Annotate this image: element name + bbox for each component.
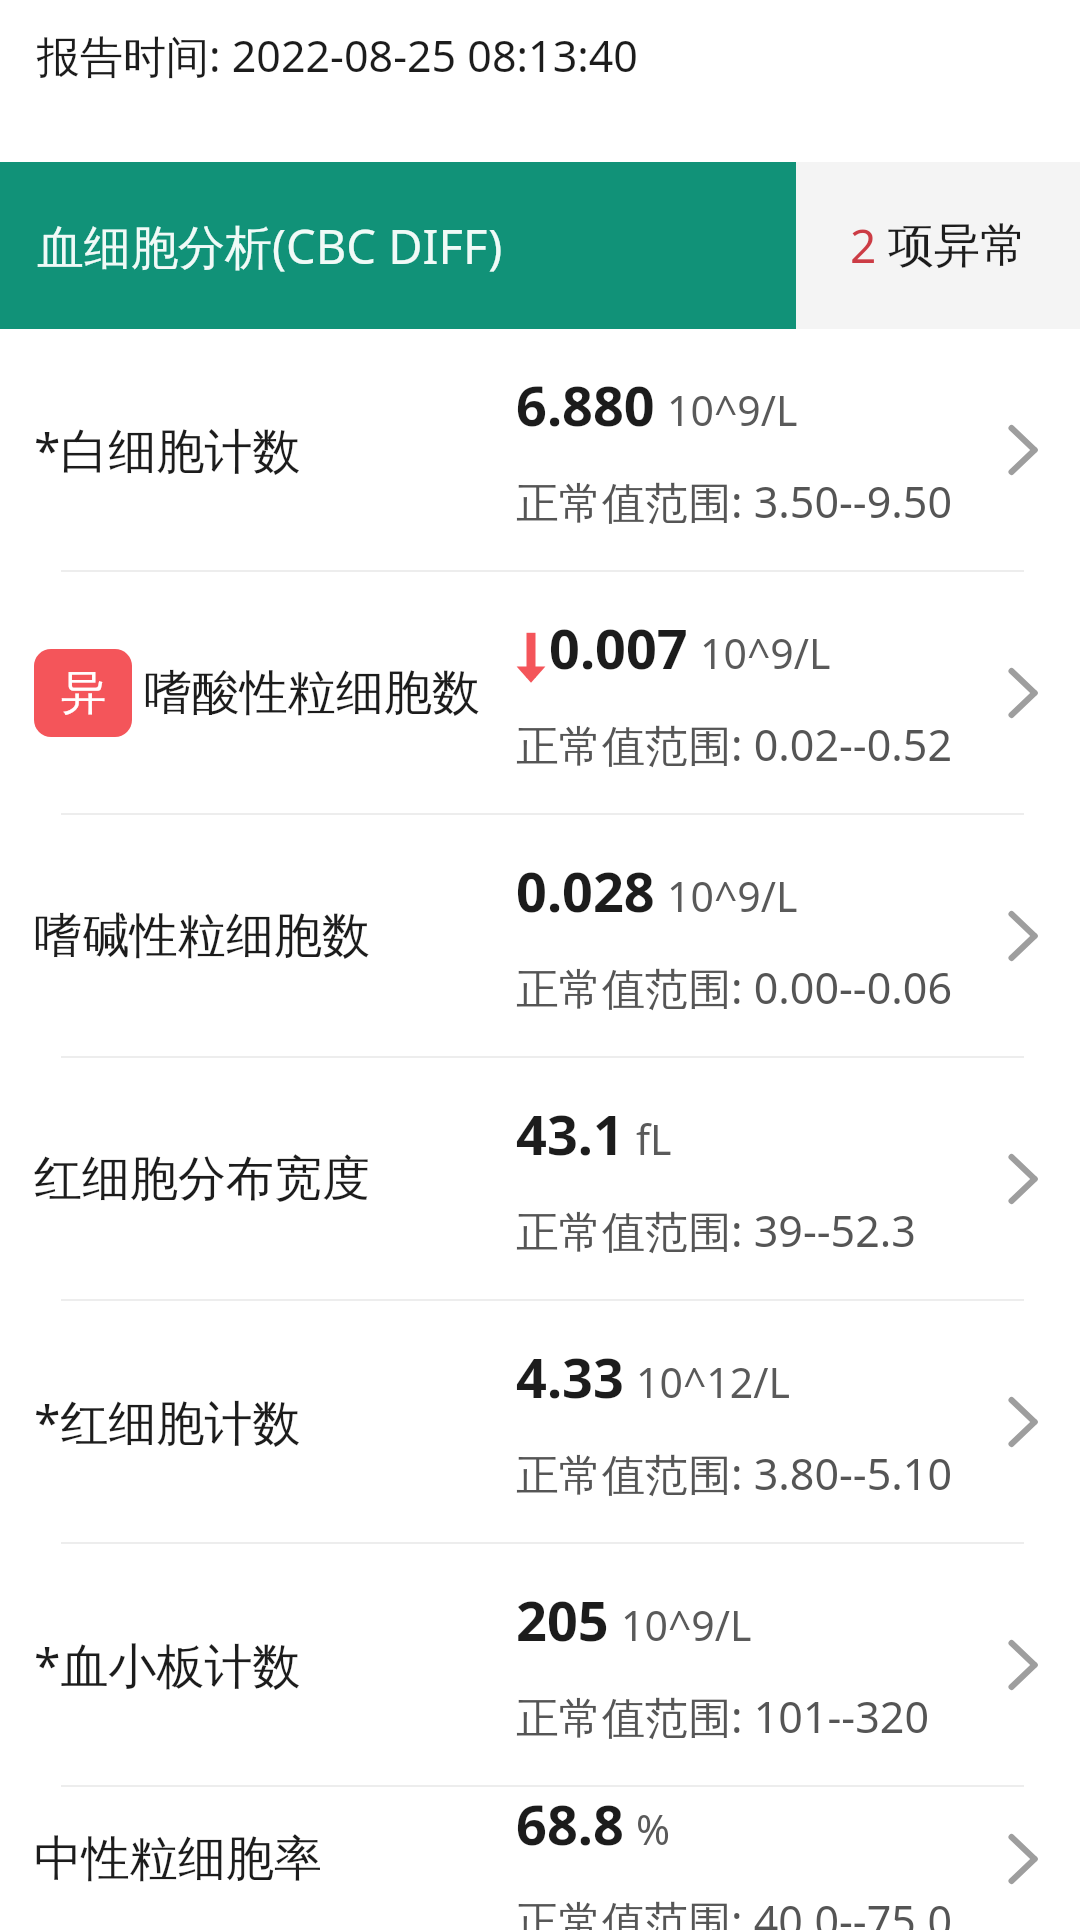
staticText: % [636,1801,671,1857]
button[interactable]: 嗜碱性粒细胞数 [0,815,1080,1056]
staticText: 6.880 [516,368,655,442]
staticText: 正常值范围: 0.00--0.06 [516,958,953,1017]
other: 查看 嗜酸性粒细胞数 详情 [994,665,1050,721]
other: 查看 嗜碱性粒细胞数 详情 [994,908,1050,964]
button[interactable]: 红细胞分布宽度 [0,1058,1080,1299]
staticText: *血小板计数 [34,1632,301,1698]
other: 查看 *血小板计数 详情 [994,1637,1050,1693]
staticText: 正常值范围: 3.80--5.10 [516,1444,953,1503]
staticText: 10^9/L [621,1597,752,1653]
other: 查看 *白细胞计数 详情 [994,422,1050,478]
button[interactable]: 2 [796,162,1080,329]
staticText: 43.1 [516,1097,624,1171]
staticText: 68.8 [516,1787,624,1861]
staticText: 0.028 [516,854,655,928]
staticText: 嗜酸性粒细胞数 [144,663,480,723]
staticText: 0.007 [549,611,688,685]
staticText: *白细胞计数 [34,417,301,483]
other: 查看 中性粒细胞率 详情 [994,1831,1050,1887]
staticText: 4.33 [516,1340,624,1414]
staticText: 项异常 [888,217,1026,275]
staticText: 红细胞分布宽度 [34,1149,370,1209]
staticText: 10^9/L [667,868,798,924]
button[interactable]: *血小板计数 [0,1544,1080,1785]
staticText: 正常值范围: 101--320 [516,1687,929,1746]
staticText: 10^12/L [636,1354,790,1410]
button[interactable]: 中性粒细胞率 [0,1787,1080,1930]
staticText: 异 [61,665,106,722]
other: 查看 红细胞分布宽度 详情 [994,1151,1050,1207]
staticText: 正常值范围: 40.0--75.0 [516,1891,953,1930]
staticText: 205 [516,1583,609,1657]
staticText: 血细胞分析(CBC DIFF) [37,214,503,278]
staticText: 正常值范围: 3.50--9.50 [516,472,953,531]
staticText: 正常值范围: 0.02--0.52 [516,715,953,774]
button[interactable]: 血细胞分析(CBC DIFF) [0,162,796,329]
other: 查看 *红细胞计数 详情 [994,1394,1050,1450]
staticText: 2 [850,214,877,277]
button[interactable]: 异 [0,572,1080,813]
staticText: 正常值范围: 39--52.3 [516,1201,916,1260]
staticText: 报告时间: 2022-08-25 08:13:40 [37,26,638,85]
staticText: 10^9/L [700,625,831,681]
button[interactable]: *红细胞计数 [0,1301,1080,1542]
staticText: *红细胞计数 [34,1389,301,1455]
staticText: fL [636,1111,672,1167]
button[interactable]: *白细胞计数 [0,329,1080,570]
staticText: 10^9/L [667,382,798,438]
staticText: 中性粒细胞率 [34,1829,322,1889]
staticText: 嗜碱性粒细胞数 [34,906,370,966]
